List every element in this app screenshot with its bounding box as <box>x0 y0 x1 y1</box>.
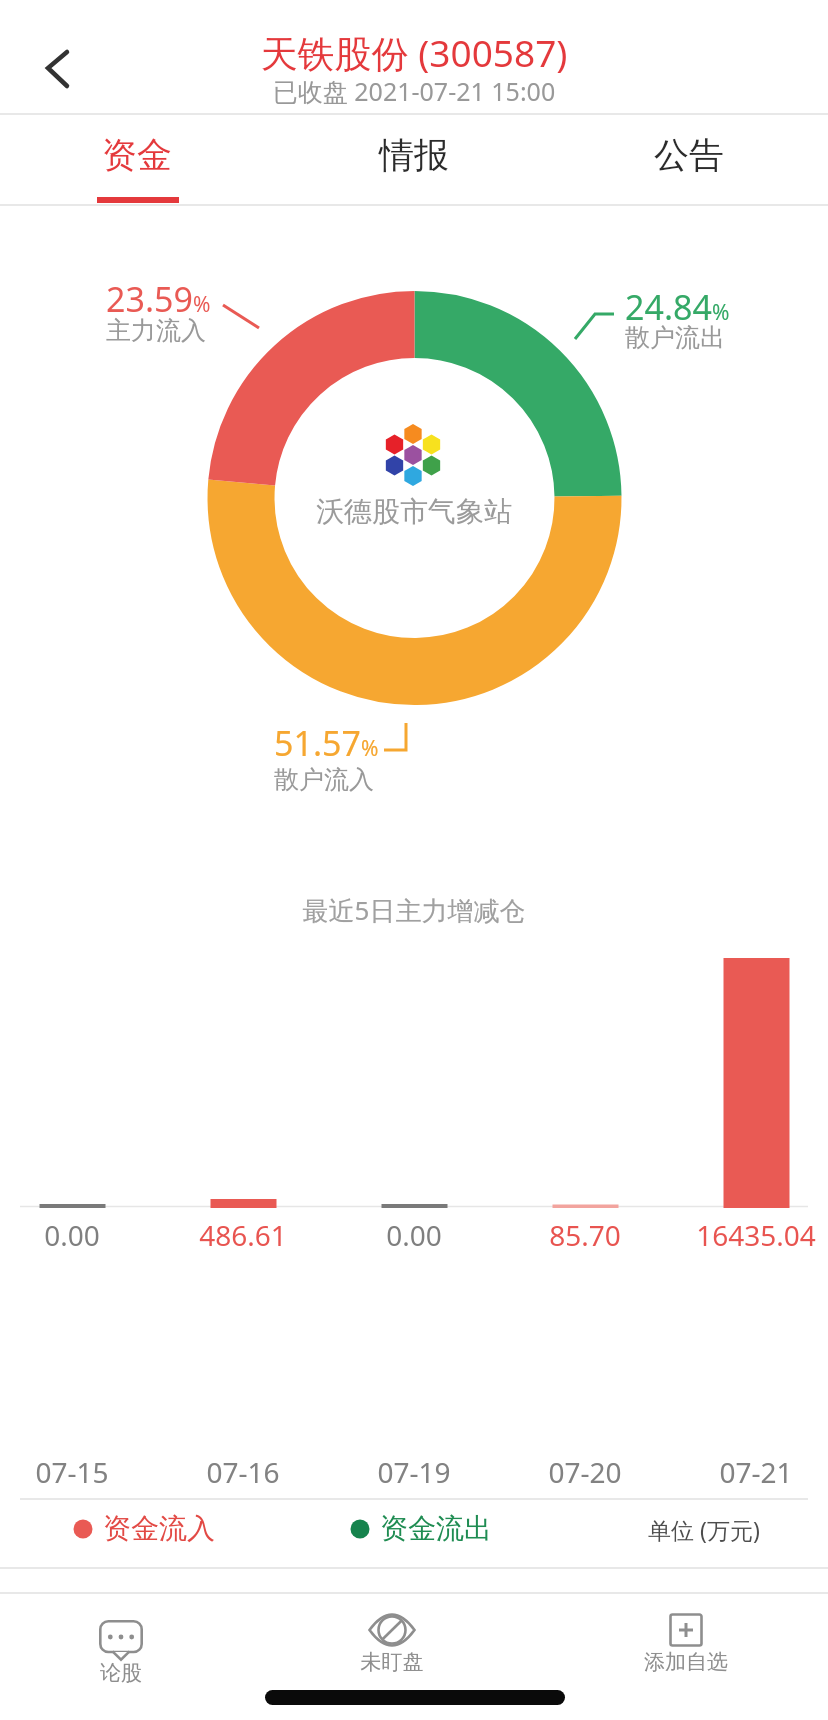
staticText: 单位 (万元) <box>648 1514 760 1545</box>
staticText: 未盯盘 <box>302 1649 482 1675</box>
staticText: 51.57 <box>274 720 361 766</box>
staticText: 23.59 <box>106 276 193 322</box>
staticText: 散户流出 <box>625 322 725 353</box>
staticText: 添加自选 <box>596 1649 776 1675</box>
staticText: 沃德股市气象站 <box>0 494 828 529</box>
staticText: 公告 <box>654 133 724 177</box>
staticText: 486.61 <box>153 1216 333 1254</box>
staticText: 24.84 <box>625 284 712 330</box>
staticText: 已收盘 2021-07-21 15:00 <box>0 74 828 108</box>
staticText: 07-21 <box>666 1453 828 1491</box>
staticText: 16435.04 <box>666 1216 828 1254</box>
staticText: % <box>712 298 730 327</box>
button[interactable]: 公告 <box>621 115 757 195</box>
button[interactable]: 论股 <box>31 1598 211 1694</box>
staticText: 资金 <box>102 133 172 177</box>
staticText: 85.70 <box>495 1216 675 1254</box>
staticText: 散户流入 <box>274 764 374 795</box>
staticText: 资金流出 <box>380 1511 492 1546</box>
staticText: 资金流入 <box>103 1511 215 1546</box>
staticText: 0.00 <box>0 1216 162 1254</box>
button[interactable]: 添加自选 <box>596 1598 776 1694</box>
button[interactable] <box>38 42 82 94</box>
staticText: 论股 <box>31 1660 211 1686</box>
button[interactable]: 资金 <box>69 115 205 195</box>
staticText: 最近5日主力增减仓 <box>0 892 828 928</box>
button[interactable]: 资金流出 <box>350 1511 492 1546</box>
staticText: 07-15 <box>0 1453 162 1491</box>
button[interactable]: 资金流入 <box>73 1511 215 1546</box>
button[interactable]: 情报 <box>346 115 482 195</box>
staticText: % <box>361 734 379 763</box>
staticText: 0.00 <box>324 1216 504 1254</box>
button[interactable]: 未盯盘 <box>302 1598 482 1694</box>
staticText: 情报 <box>379 133 449 177</box>
staticText: 07-16 <box>153 1453 333 1491</box>
staticText: 主力流入 <box>106 315 206 346</box>
staticText: 天铁股份 (300587) <box>0 27 828 78</box>
staticText: 07-20 <box>495 1453 675 1491</box>
staticText: % <box>193 290 211 319</box>
staticText: 07-19 <box>324 1453 504 1491</box>
